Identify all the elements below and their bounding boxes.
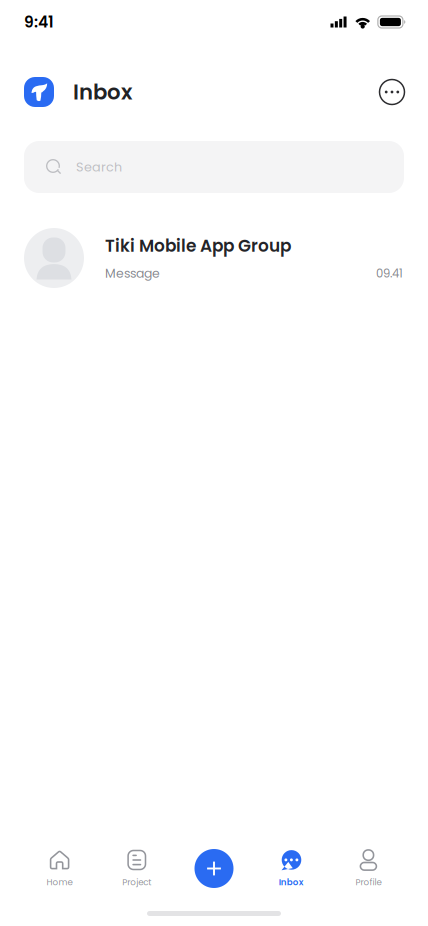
- staticText: Home: [47, 876, 73, 888]
- button[interactable]: Profile: [330, 849, 407, 897]
- button[interactable]: Create: [175, 849, 253, 897]
- button[interactable]: Tiki Mobile App Group: [24, 228, 404, 288]
- button[interactable]: More options: [373, 73, 411, 111]
- staticText: Inbox: [279, 876, 304, 888]
- staticText: Project: [122, 876, 151, 888]
- staticText: 09.41: [376, 265, 403, 281]
- button[interactable]: Search: [24, 141, 404, 193]
- staticText: Tiki Mobile App Group: [105, 234, 291, 258]
- button[interactable]: Project: [98, 849, 175, 897]
- staticText: 9:41: [24, 11, 54, 33]
- button[interactable]: Inbox: [253, 849, 330, 897]
- staticText: Search: [76, 158, 122, 176]
- staticText: Message: [105, 265, 160, 282]
- staticText: Inbox: [73, 77, 132, 107]
- staticText: Profile: [355, 876, 381, 888]
- button[interactable]: Home: [21, 849, 98, 897]
